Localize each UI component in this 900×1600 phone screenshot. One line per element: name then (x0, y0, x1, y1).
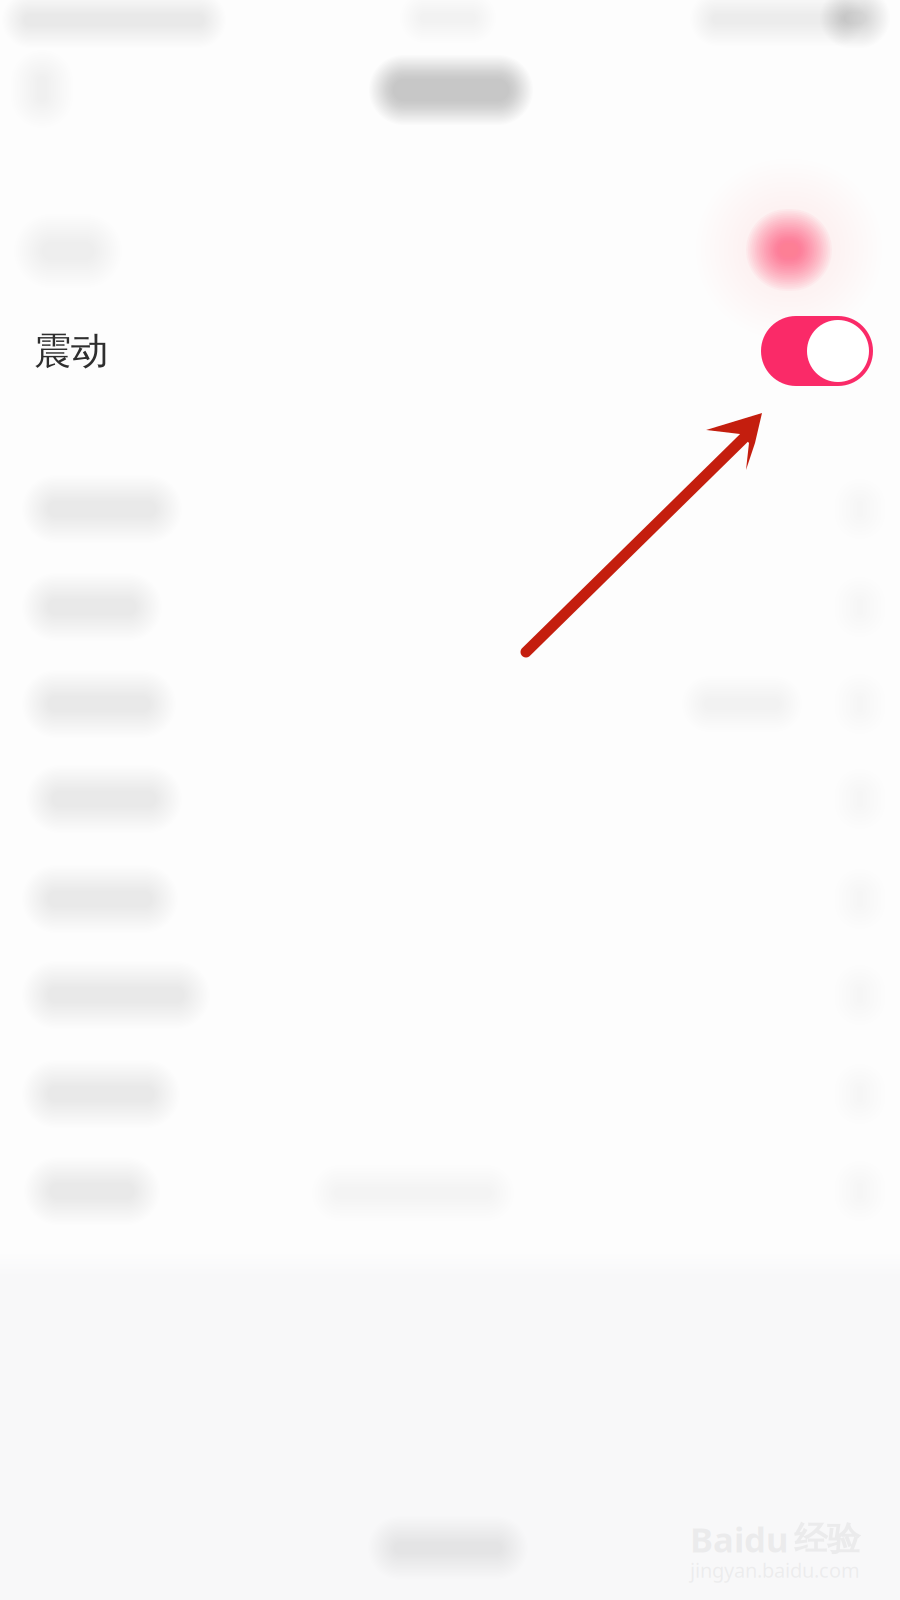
button[interactable]: 震动 (761, 316, 873, 386)
staticText: Baidu (690, 1516, 789, 1562)
staticText: jingyan.baidu.com (690, 1557, 860, 1583)
staticText: 经验 (794, 1518, 860, 1559)
staticText: 震动 (34, 328, 108, 374)
